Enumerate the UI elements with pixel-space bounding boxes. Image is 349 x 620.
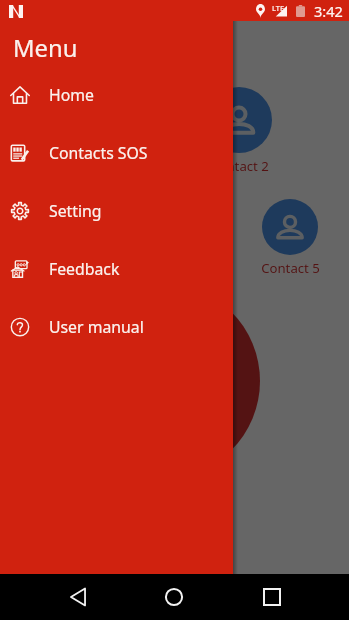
button[interactable]: Home <box>0 66 233 124</box>
staticText: User manual <box>49 316 144 338</box>
button[interactable]: Recent apps <box>252 577 292 617</box>
button[interactable]: Contact 1 <box>7 87 103 175</box>
button[interactable]: User manual <box>0 298 233 356</box>
staticText: Contact 4 <box>81 259 140 277</box>
button[interactable]: Feedback <box>0 240 233 298</box>
button[interactable] <box>64 283 260 479</box>
button[interactable]: Contact 4 <box>62 199 158 277</box>
button[interactable]: Back <box>58 577 98 617</box>
staticText: LTE <box>272 3 285 13</box>
staticText: Feedback <box>49 258 120 280</box>
staticText: Menu <box>13 32 78 64</box>
staticText: Contact 2 <box>210 157 269 175</box>
button[interactable]: Contact 2 <box>191 87 287 175</box>
staticText: Home <box>49 84 94 106</box>
button[interactable]: Contact 5 <box>242 199 338 277</box>
button[interactable]: Contacts SOS <box>0 124 233 182</box>
staticText: Contact 1 <box>26 157 85 175</box>
staticText: Contacts SOS <box>49 142 148 164</box>
staticText: 3:42 <box>314 1 343 21</box>
staticText: Setting <box>49 200 102 222</box>
button[interactable]: Setting <box>0 182 233 240</box>
button[interactable]: Home <box>154 577 194 617</box>
staticText: Contact 5 <box>261 259 320 277</box>
